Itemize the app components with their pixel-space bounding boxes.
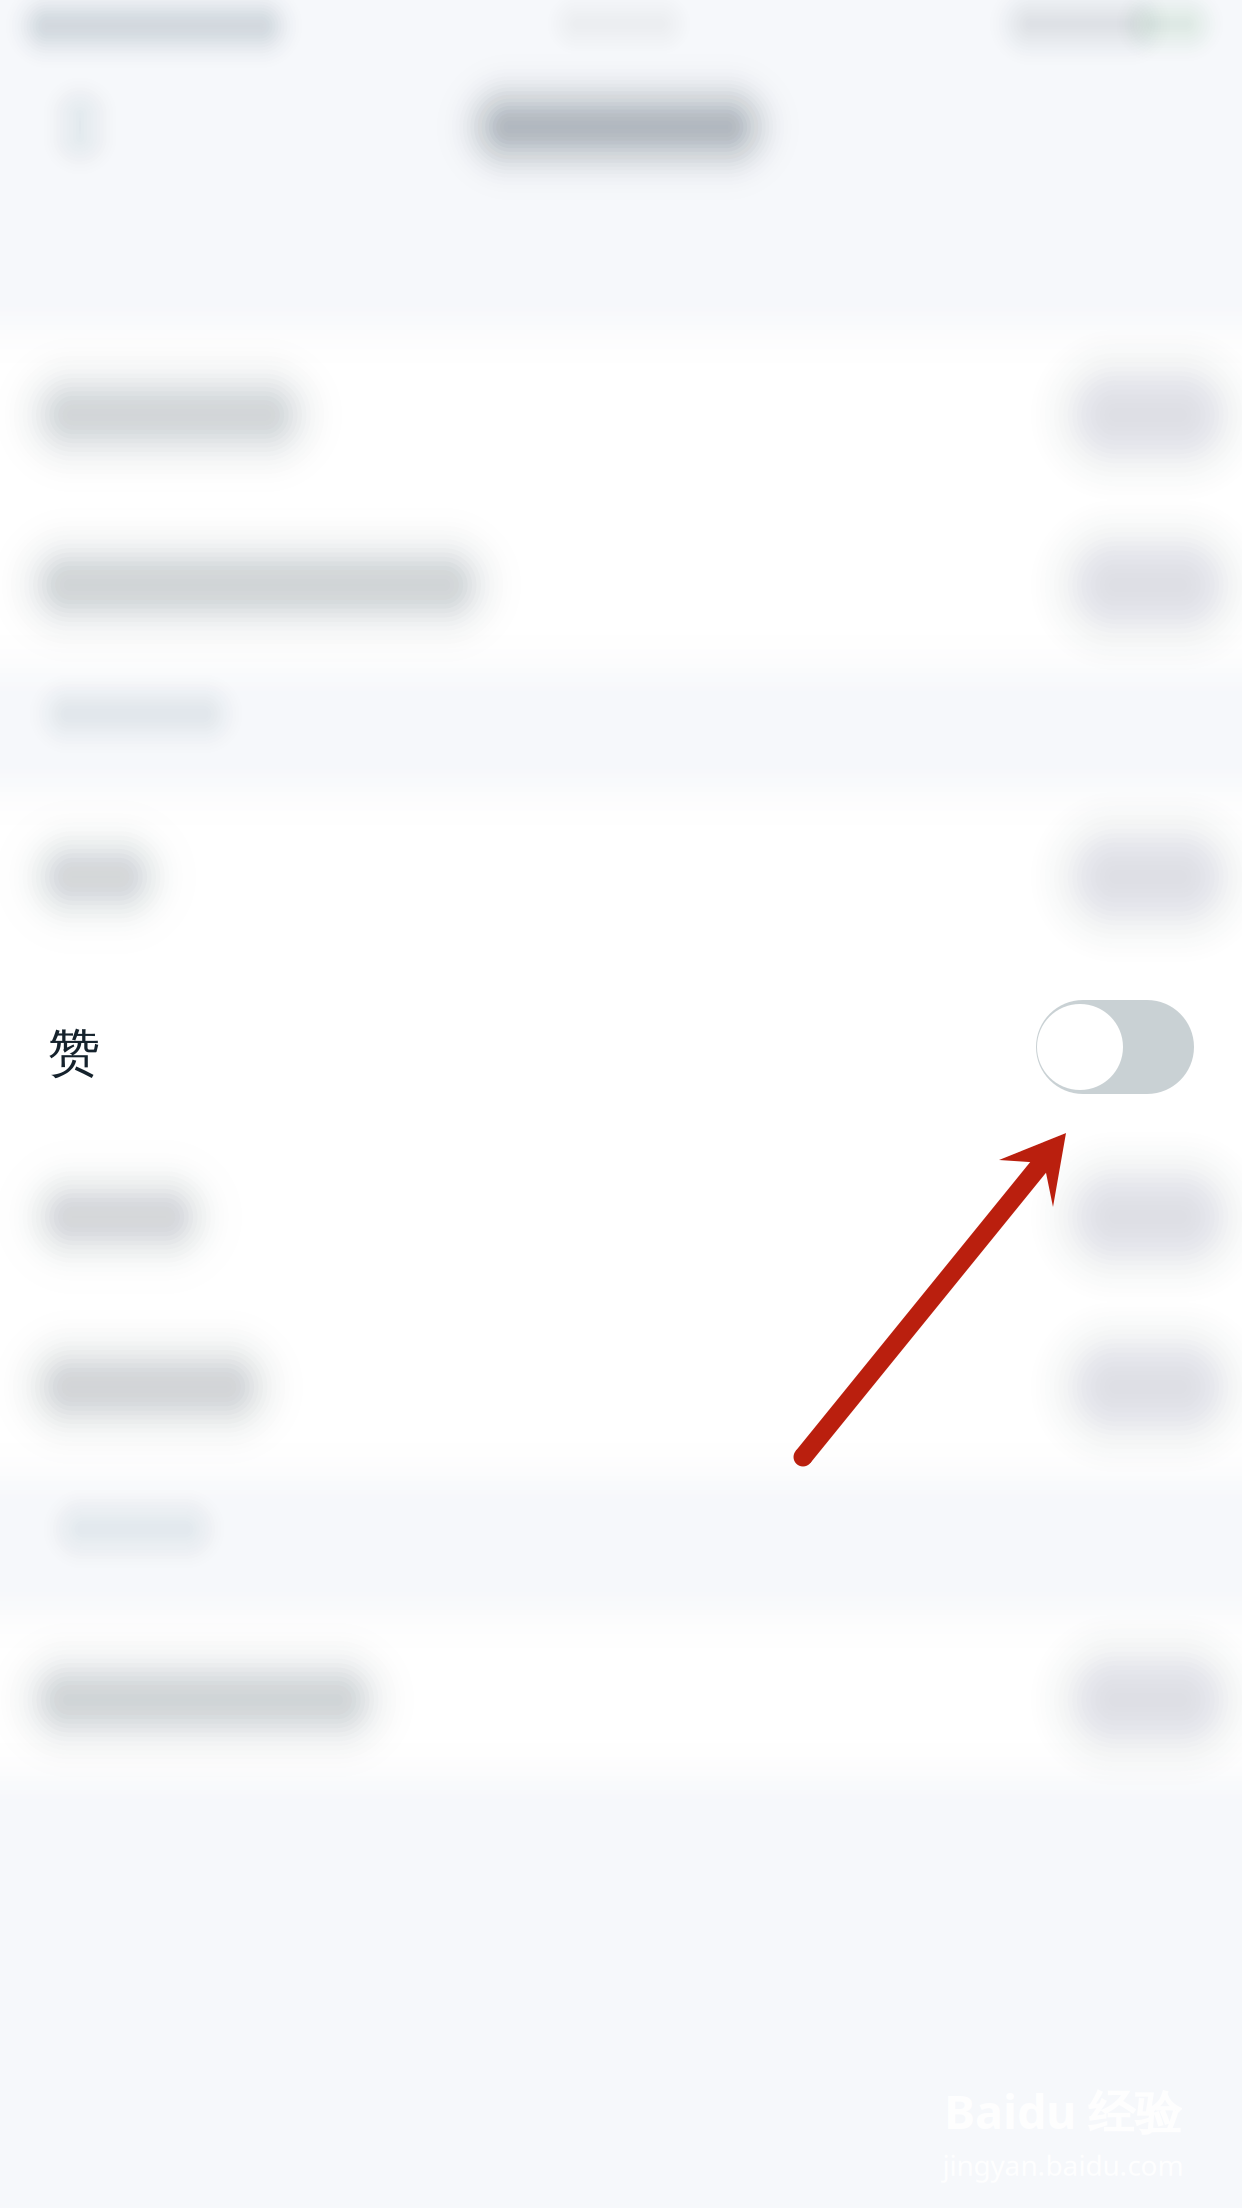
button[interactable]: Setting row 3 — [0, 792, 1242, 962]
button[interactable]: Setting row 7 — [0, 1615, 1242, 1785]
button[interactable]: Setting row 5 — [0, 1132, 1242, 1302]
button[interactable]: Setting row 2 — [0, 500, 1242, 670]
button[interactable]: Setting row 1 — [0, 330, 1242, 500]
button[interactable]: 赞 — [0, 962, 1242, 1132]
button[interactable]: Setting row 6 — [0, 1302, 1242, 1472]
staticText: Baidu 经验 — [944, 2080, 1182, 2142]
staticText: 赞 — [48, 1021, 100, 1085]
